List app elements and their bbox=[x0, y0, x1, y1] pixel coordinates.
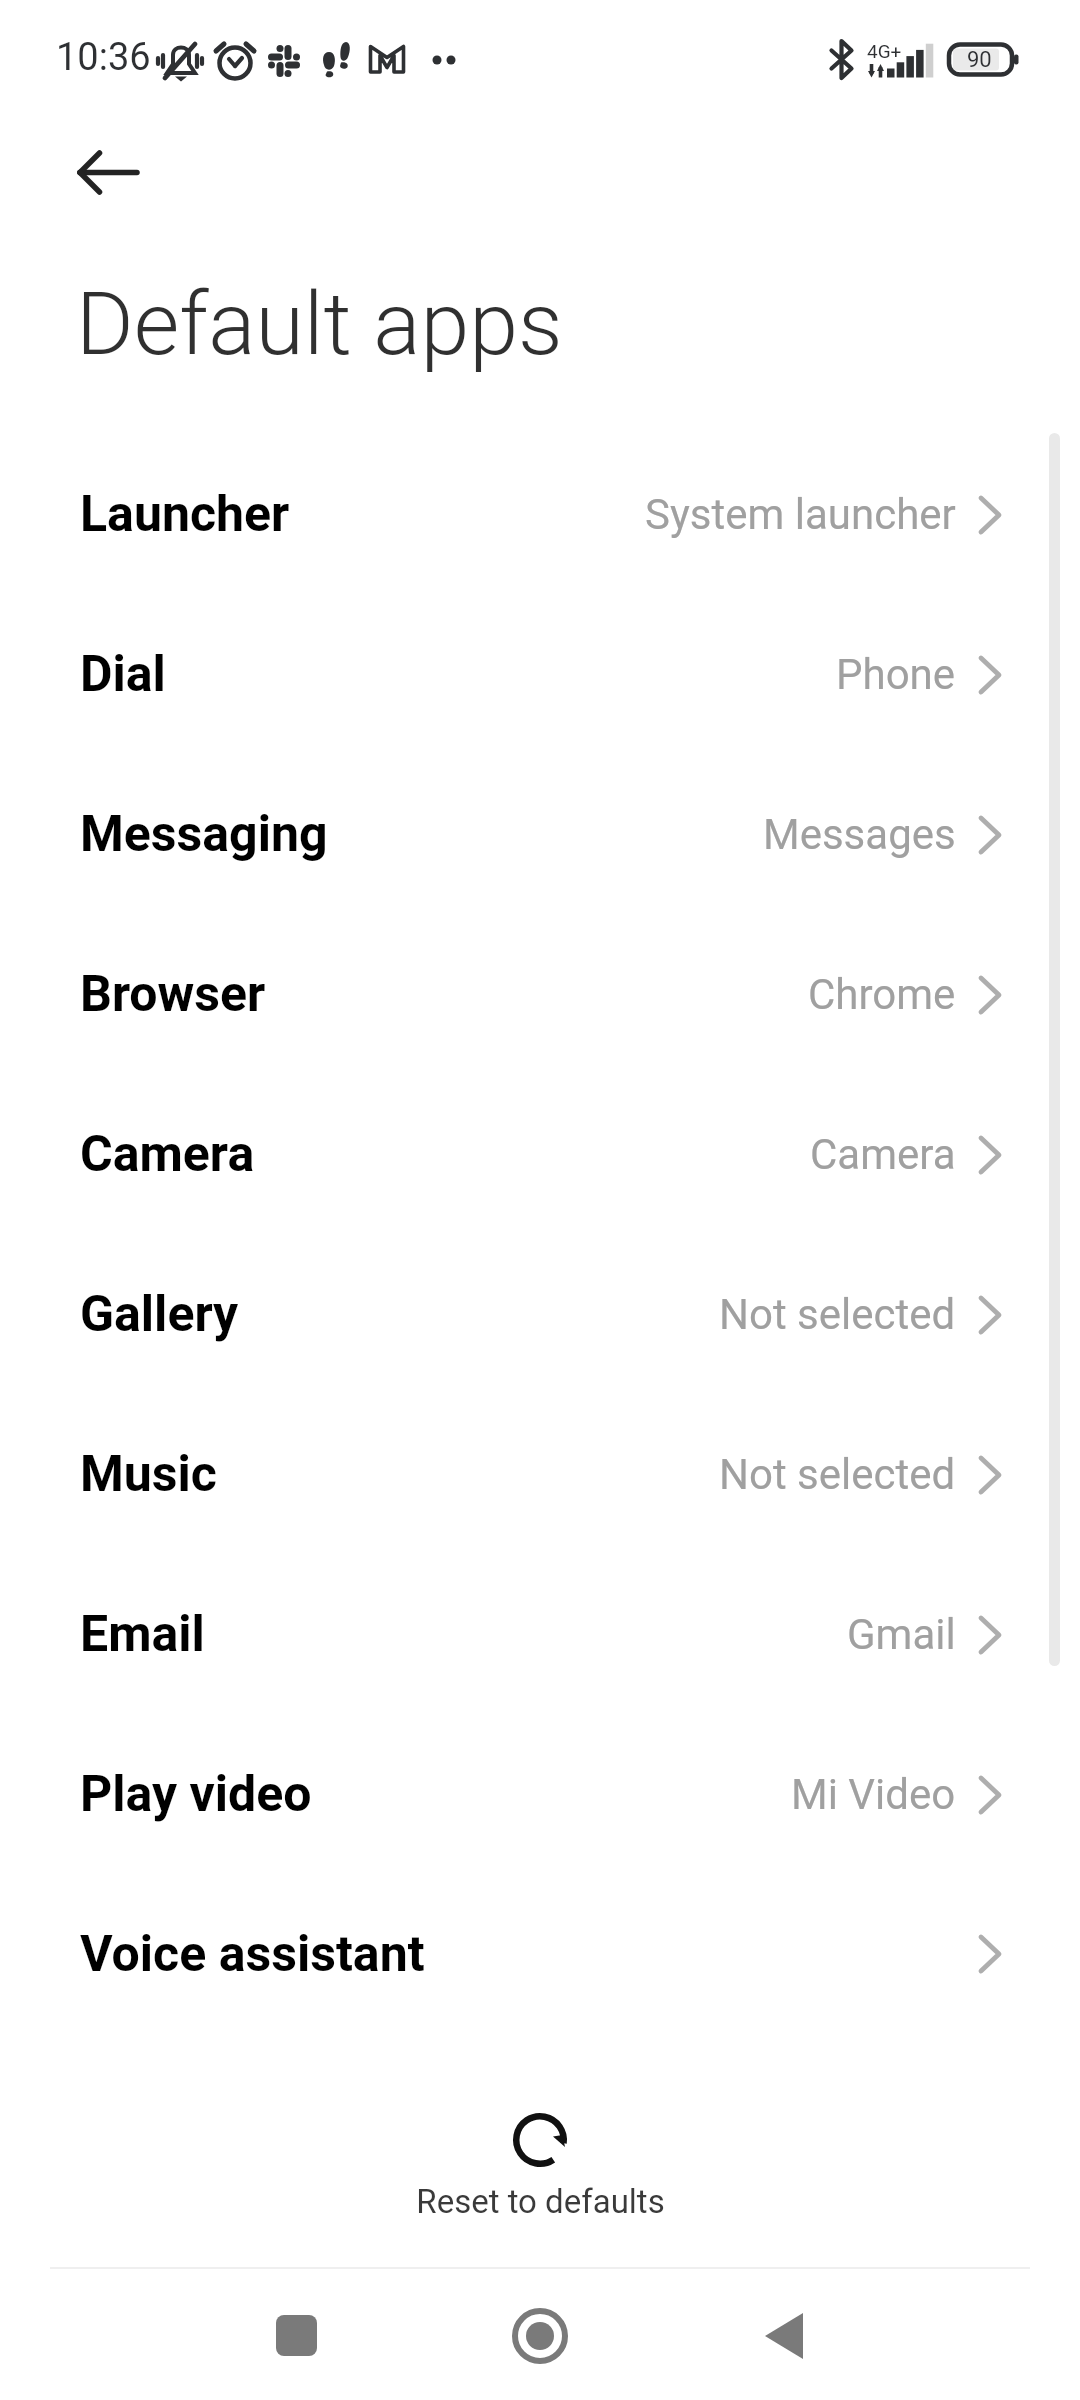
button[interactable]: Email bbox=[0, 1554, 1080, 1714]
staticText: 4G+ bbox=[867, 40, 902, 62]
staticText: Voice assistant bbox=[80, 1925, 425, 1984]
staticText: Not selected bbox=[719, 1450, 956, 1499]
button[interactable]: Reset to defaults bbox=[0, 2111, 1080, 2221]
button[interactable]: Back bbox=[694, 2267, 874, 2400]
staticText: Messages bbox=[763, 810, 956, 859]
button[interactable]: Recent apps bbox=[206, 2267, 386, 2400]
button[interactable]: Messaging bbox=[0, 754, 1080, 914]
staticText: Gallery bbox=[80, 1285, 239, 1344]
button[interactable]: Voice assistant bbox=[0, 1874, 1080, 2034]
staticText: Play video bbox=[80, 1765, 312, 1824]
staticText: Reset to defaults bbox=[416, 2182, 665, 2221]
staticText: Gmail bbox=[847, 1610, 956, 1659]
button[interactable]: Gallery bbox=[0, 1234, 1080, 1394]
staticText: Launcher bbox=[80, 485, 290, 544]
button[interactable]: Home bbox=[450, 2267, 630, 2400]
staticText: Email bbox=[80, 1605, 205, 1664]
staticText: Browser bbox=[80, 965, 266, 1024]
staticText: Camera bbox=[810, 1130, 956, 1179]
staticText: Phone bbox=[836, 650, 956, 699]
staticText: Music bbox=[80, 1445, 217, 1504]
staticText: Mi Video bbox=[791, 1770, 956, 1819]
button[interactable]: Camera bbox=[0, 1074, 1080, 1234]
staticText: 90 bbox=[967, 47, 992, 73]
button[interactable]: Back bbox=[48, 132, 168, 216]
staticText: Messaging bbox=[80, 805, 328, 864]
staticText: Chrome bbox=[808, 970, 956, 1019]
staticText: Dial bbox=[80, 645, 166, 704]
button[interactable]: Play video bbox=[0, 1714, 1080, 1874]
staticText: Not selected bbox=[719, 1290, 956, 1339]
staticText: 10:36 bbox=[56, 35, 151, 80]
button[interactable]: Browser bbox=[0, 914, 1080, 1074]
button[interactable]: Dial bbox=[0, 594, 1080, 754]
button[interactable]: Music bbox=[0, 1394, 1080, 1554]
staticText: System launcher bbox=[645, 490, 956, 539]
staticText: Camera bbox=[80, 1125, 255, 1184]
button[interactable]: Launcher bbox=[0, 434, 1080, 594]
staticText: Default apps bbox=[76, 272, 563, 375]
